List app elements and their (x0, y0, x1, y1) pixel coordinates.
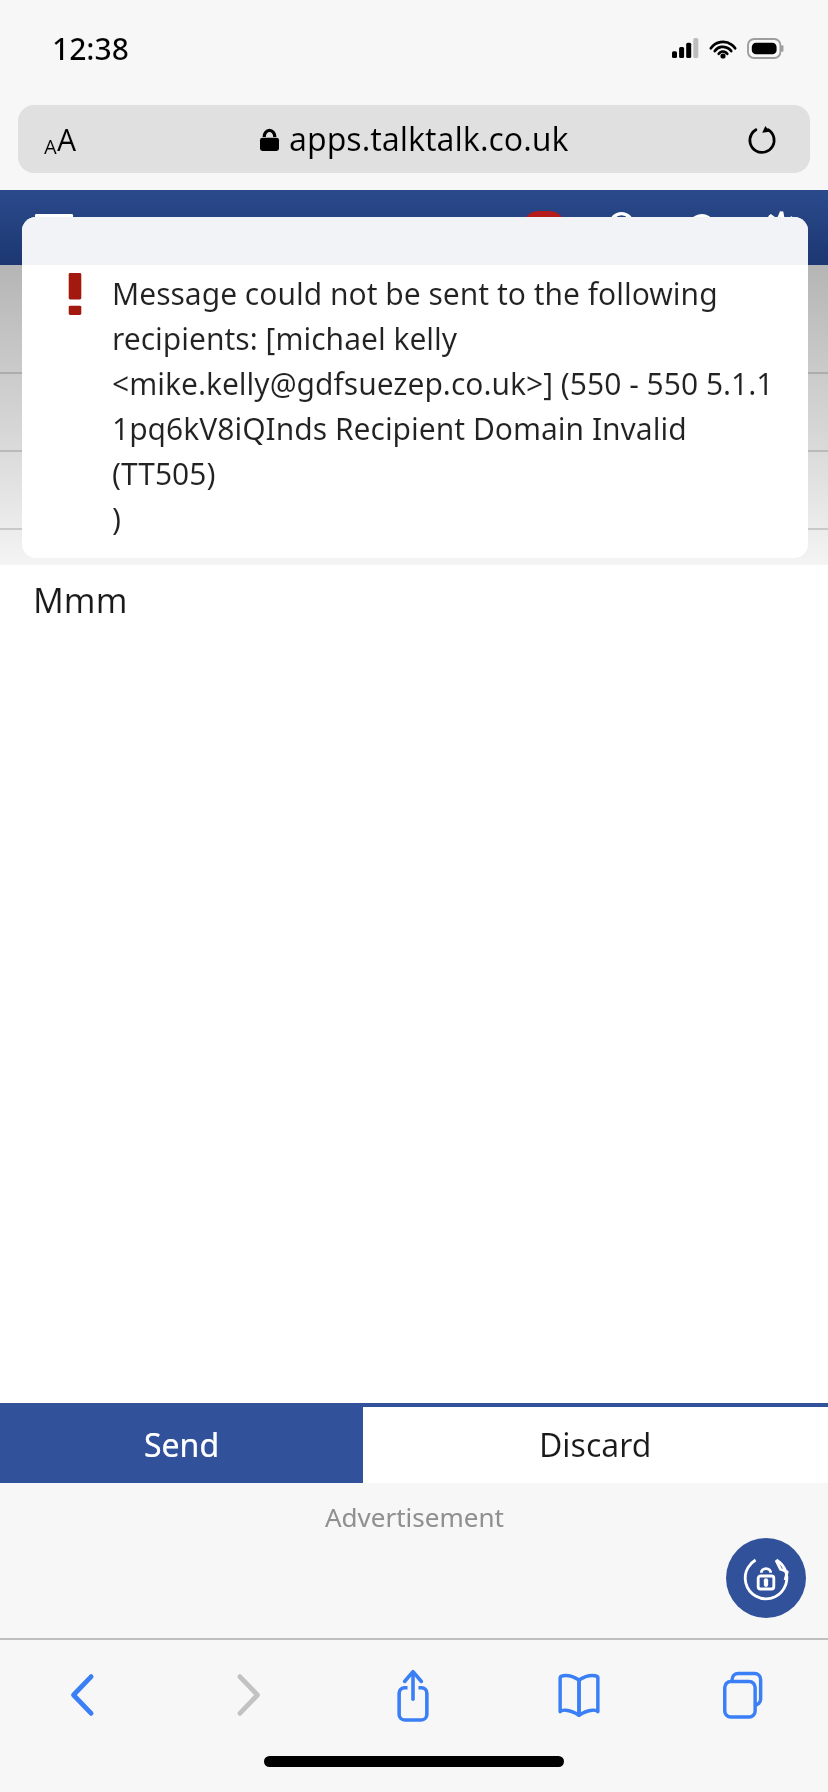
button[interactable]: Reload page (740, 117, 784, 161)
button[interactable]: Text size options (44, 119, 77, 160)
staticText: TalkTalk shit (30, 389, 222, 435)
staticText: Message could not be sent to the followi… (112, 273, 780, 539)
button[interactable]: Back (0, 1640, 165, 1750)
button[interactable]: Forward (165, 1640, 330, 1750)
button[interactable]: Privacy info (726, 1538, 806, 1618)
button[interactable]: Discard (363, 1407, 828, 1483)
staticText: Advertisement (325, 1499, 504, 1534)
staticText: apps.talktalk.co.uk (289, 117, 569, 161)
staticText: Attachments (30, 467, 234, 513)
button[interactable]: Menu (26, 200, 82, 256)
button[interactable]: To (0, 265, 828, 372)
button[interactable]: Unread messages (512, 196, 576, 260)
button[interactable]: TalkTalk shit (0, 374, 828, 450)
button[interactable]: Search (594, 198, 654, 258)
button[interactable]: Settings (750, 198, 810, 258)
staticText: Discard (539, 1423, 652, 1467)
staticText: A (44, 133, 57, 160)
button[interactable]: Text size options (18, 105, 810, 173)
staticText: michael kelly x (150, 297, 378, 341)
button[interactable]: Message could not be sent to the followi… (22, 217, 808, 558)
staticText: Send (144, 1423, 220, 1467)
button[interactable]: Bookmarks (496, 1640, 662, 1750)
button[interactable]: Share (330, 1640, 496, 1750)
staticText: 12:38 (52, 28, 129, 69)
staticText: A (57, 119, 77, 160)
staticText: Mmm (33, 577, 128, 623)
button[interactable]: Tabs (662, 1640, 828, 1750)
staticText: 0 (538, 213, 551, 243)
button[interactable]: Send (0, 1407, 363, 1483)
button[interactable]: Refresh (672, 198, 732, 258)
button[interactable]: Attachments (0, 452, 828, 528)
